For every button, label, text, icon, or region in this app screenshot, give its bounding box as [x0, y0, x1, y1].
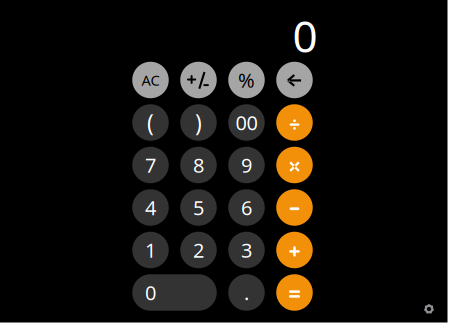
staticText: ) [195, 107, 202, 137]
button[interactable]: 7 [132, 147, 169, 183]
button[interactable]: ( [132, 104, 169, 141]
staticText: 8 [193, 152, 204, 178]
button[interactable]: Multiply [276, 147, 313, 183]
staticText: 0 [292, 6, 317, 65]
button[interactable]: Toggle sign [180, 62, 217, 98]
button[interactable]: 3 [228, 232, 265, 268]
button[interactable]: 0 [132, 274, 217, 311]
staticText: ( [147, 107, 154, 137]
button[interactable]: 4 [132, 189, 169, 226]
button[interactable]: Divide [276, 104, 313, 141]
button[interactable]: 00 [228, 104, 265, 141]
staticText: 5 [193, 194, 204, 221]
staticText: 3 [241, 237, 252, 263]
button[interactable]: AC [132, 62, 169, 98]
button[interactable]: 5 [180, 189, 217, 226]
staticText: . [244, 279, 249, 306]
button[interactable]: . [228, 274, 265, 311]
button[interactable]: Equals [276, 274, 313, 311]
button[interactable]: % [228, 62, 265, 98]
button[interactable]: Settings [419, 299, 439, 319]
staticText: % [238, 67, 255, 93]
staticText: 6 [241, 194, 252, 221]
staticText: 2 [193, 237, 204, 263]
staticText: 9 [241, 152, 252, 178]
staticText: 4 [145, 194, 156, 221]
button[interactable]: 8 [180, 147, 217, 183]
button[interactable]: 2 [180, 232, 217, 268]
button[interactable]: Subtract [276, 189, 313, 226]
button[interactable]: 1 [132, 232, 169, 268]
staticText: 00 [235, 109, 257, 136]
staticText: 1 [145, 237, 156, 263]
button[interactable]: ) [180, 104, 217, 141]
button[interactable]: Delete [276, 62, 313, 98]
button[interactable]: Add [276, 232, 313, 268]
button[interactable]: 9 [228, 147, 265, 183]
staticText: AC [141, 70, 159, 90]
staticText: 7 [145, 152, 156, 178]
button[interactable]: 6 [228, 189, 265, 226]
staticText: 0 [145, 279, 156, 306]
